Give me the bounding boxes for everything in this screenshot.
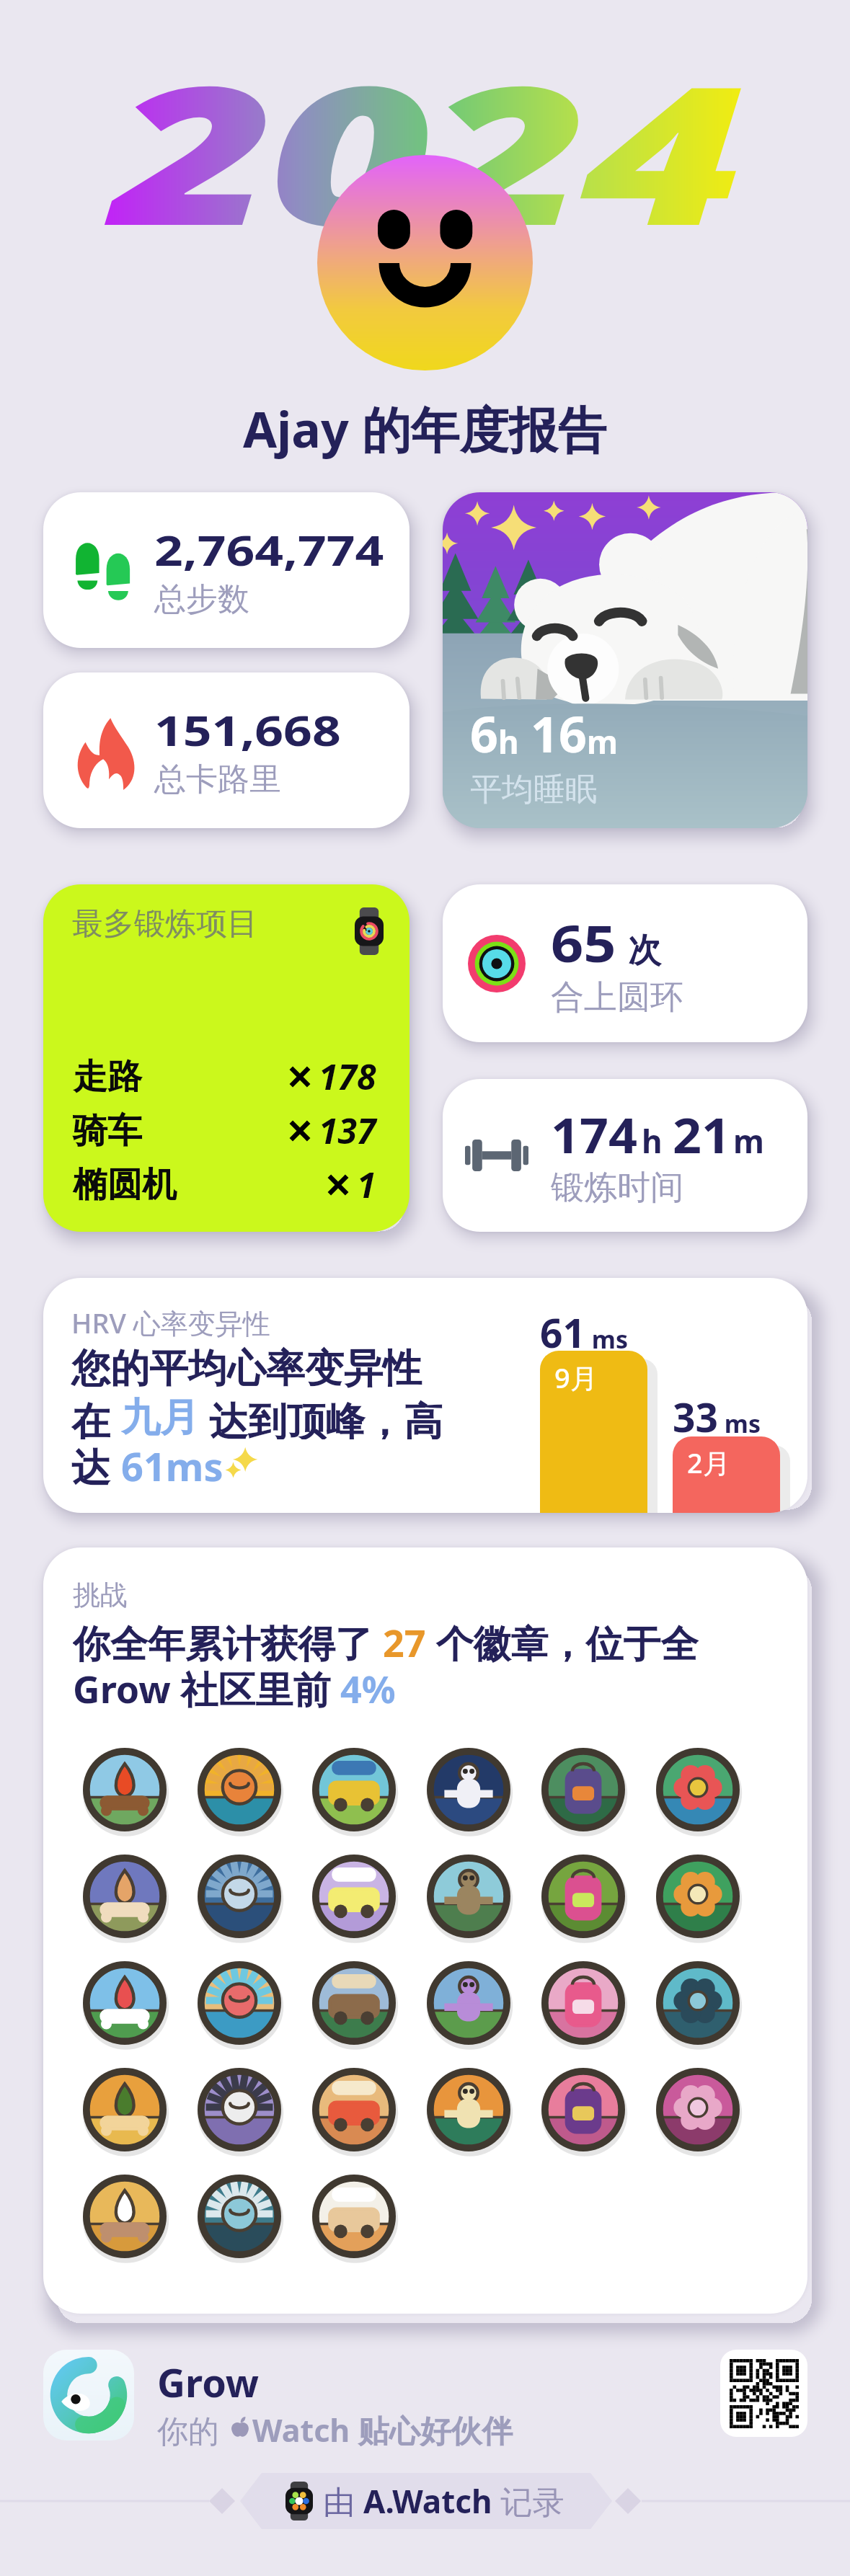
- staticText: 骑车: [73, 1109, 142, 1152]
- staticText: 178: [319, 1053, 376, 1100]
- staticText: 174: [551, 1102, 638, 1167]
- staticText: 最多锻炼项目: [72, 905, 258, 943]
- staticText: Grow 社区里前: [73, 1663, 340, 1709]
- staticText: Watch 贴心好伙伴: [252, 2409, 513, 2446]
- staticText: 137: [319, 1107, 376, 1154]
- button[interactable]: 65: [443, 884, 807, 1042]
- button[interactable]: QR code: [720, 2350, 807, 2437]
- button[interactable]: 151,668: [43, 672, 409, 828]
- staticText: 个徽章，位于全: [426, 1617, 699, 1663]
- staticText: A.Watch: [363, 2479, 492, 2523]
- staticText: ms: [585, 1323, 629, 1356]
- staticText: 27: [383, 1617, 426, 1663]
- staticText: 记录: [492, 2479, 565, 2523]
- staticText: 65: [551, 908, 617, 977]
- button[interactable]: HRV 心率变异性: [43, 1278, 807, 1513]
- staticText: 总步数: [154, 579, 249, 619]
- staticText: 达到顶峰，高: [199, 1393, 443, 1439]
- staticText: 2024: [112, 21, 738, 281]
- staticText: 61ms: [121, 1439, 223, 1485]
- staticText: 61: [540, 1305, 585, 1359]
- staticText: 挑战: [73, 1578, 128, 1612]
- staticText: h: [498, 720, 519, 763]
- staticText: ms: [718, 1407, 761, 1440]
- staticText: 在: [71, 1393, 121, 1439]
- staticText: 合上圆环: [551, 977, 683, 1018]
- staticText: 6: [470, 700, 498, 767]
- staticText: m: [587, 720, 618, 763]
- staticText: 椭圆机: [73, 1163, 177, 1207]
- button[interactable]: 由: [271, 2474, 579, 2528]
- button[interactable]: Grow app icon: [43, 2350, 134, 2440]
- staticText: 达: [71, 1439, 121, 1485]
- staticText: 16: [531, 700, 587, 767]
- staticText: m: [733, 1119, 764, 1163]
- staticText: 151,668: [154, 701, 341, 758]
- button[interactable]: 2,764,774: [43, 492, 409, 648]
- staticText: 平均睡眠: [470, 770, 597, 809]
- staticText: Ajay 的年度报告: [243, 395, 607, 462]
- staticText: 2,764,774: [154, 521, 384, 578]
- staticText: HRV 心率变异性: [71, 1304, 270, 1341]
- staticText: Grow: [157, 2355, 260, 2409]
- staticText: 总卡路里: [154, 760, 281, 799]
- button[interactable]: 6: [443, 492, 807, 828]
- staticText: 九月: [121, 1393, 199, 1439]
- staticText: 4%: [340, 1663, 396, 1709]
- staticText: 你全年累计获得了: [73, 1617, 383, 1663]
- staticText: 您的平均心率变异性: [71, 1344, 422, 1393]
- staticText: 9月: [554, 1359, 598, 1396]
- staticText: 由: [323, 2479, 363, 2523]
- staticText: 2月: [687, 1444, 730, 1481]
- staticText: 21: [673, 1102, 731, 1167]
- staticText: 锻炼时间: [551, 1167, 683, 1209]
- staticText: 次: [628, 930, 661, 972]
- staticText: 走路: [73, 1055, 142, 1098]
- button[interactable]: 挑战: [43, 1547, 807, 2314]
- button[interactable]: 最多锻炼项目: [43, 884, 409, 1232]
- staticText: 1: [357, 1161, 376, 1208]
- button[interactable]: 174: [443, 1079, 807, 1232]
- staticText: h: [642, 1119, 663, 1163]
- staticText: 你的: [157, 2409, 228, 2446]
- staticText: 33: [673, 1390, 718, 1444]
